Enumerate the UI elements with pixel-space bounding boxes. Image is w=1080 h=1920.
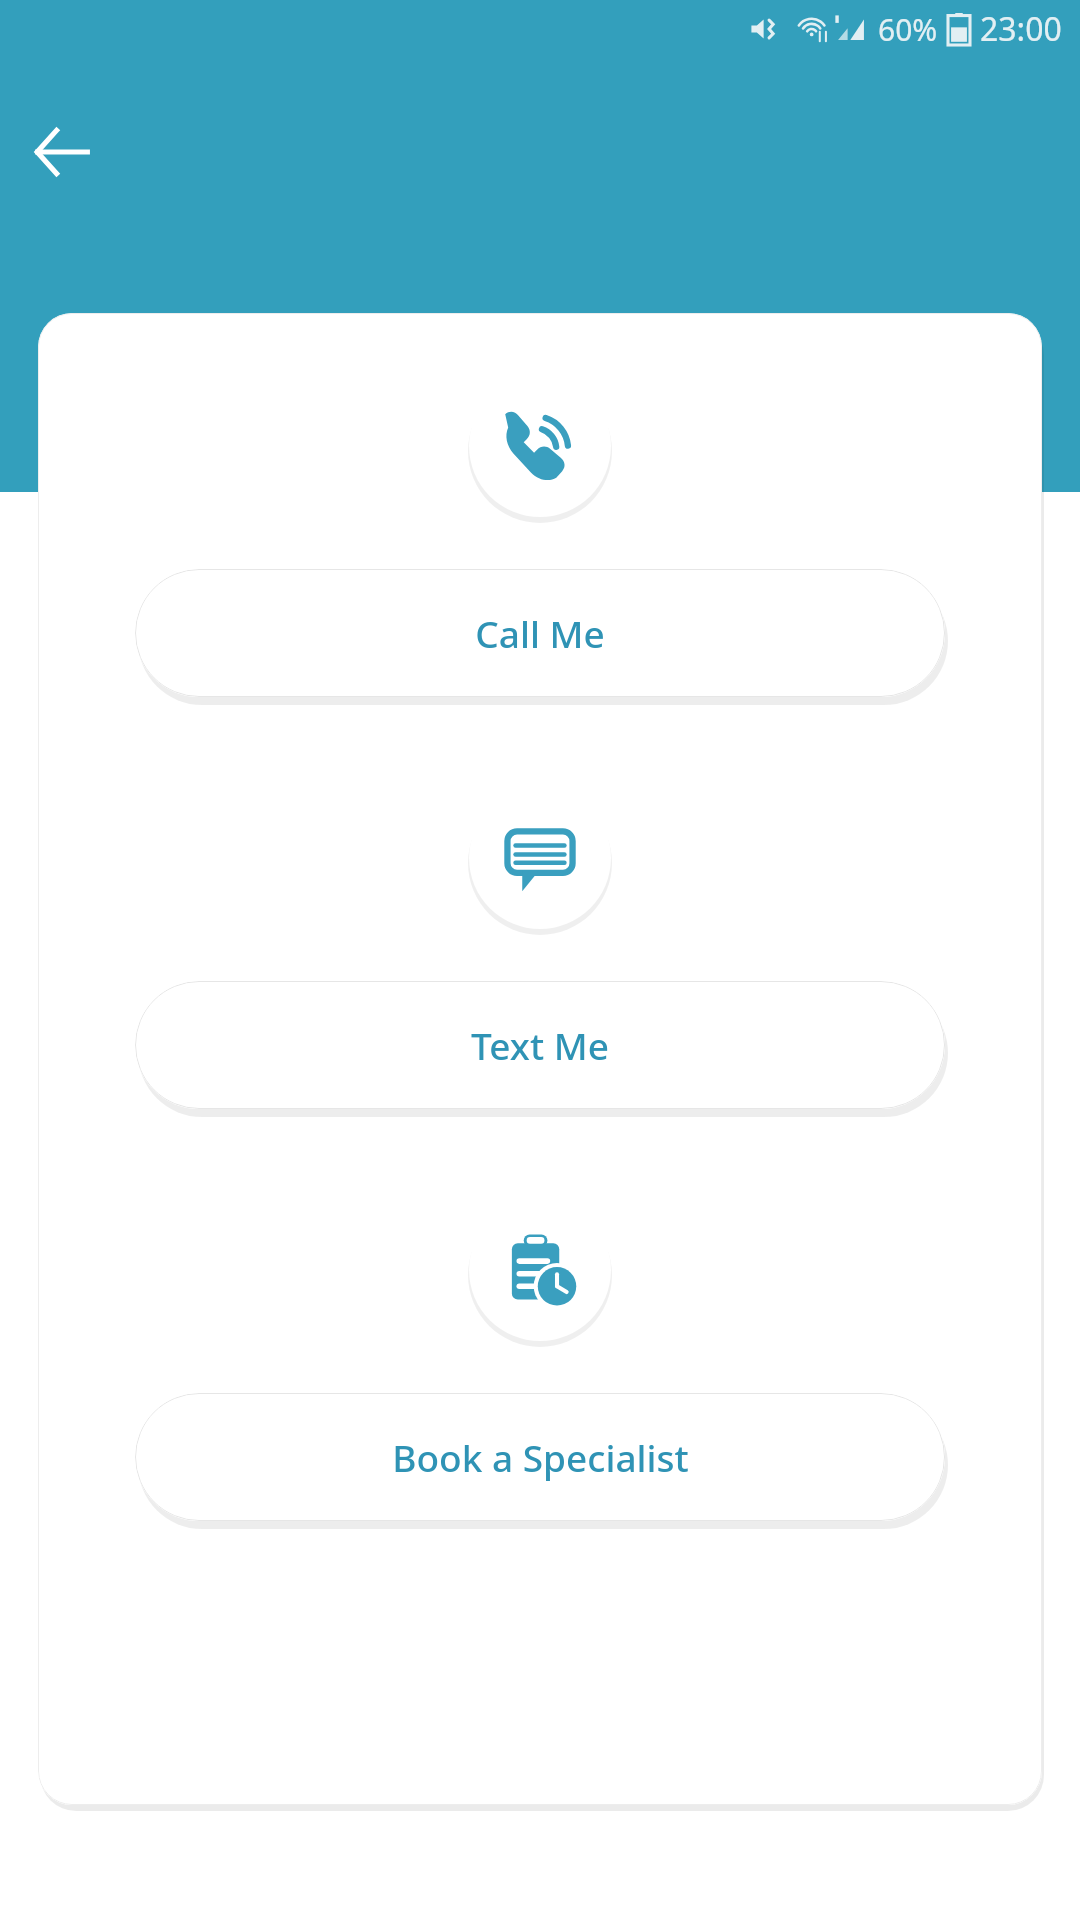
button[interactable]: Back [12, 102, 112, 202]
staticText: 60% [878, 9, 938, 50]
staticText: Call Me [475, 608, 605, 658]
staticText: Book a Specialist [392, 1432, 689, 1482]
button[interactable]: Call Me [135, 569, 945, 697]
button[interactable]: Text Me [135, 981, 945, 1109]
staticText: Text Me [471, 1020, 609, 1070]
button[interactable]: Book a Specialist [135, 1393, 945, 1521]
staticText: 23:00 [980, 7, 1062, 51]
